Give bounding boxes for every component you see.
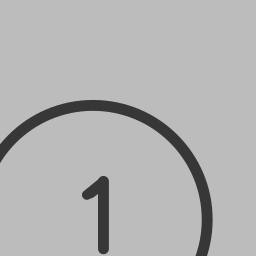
button[interactable]: Round 1 <box>0 0 256 256</box>
